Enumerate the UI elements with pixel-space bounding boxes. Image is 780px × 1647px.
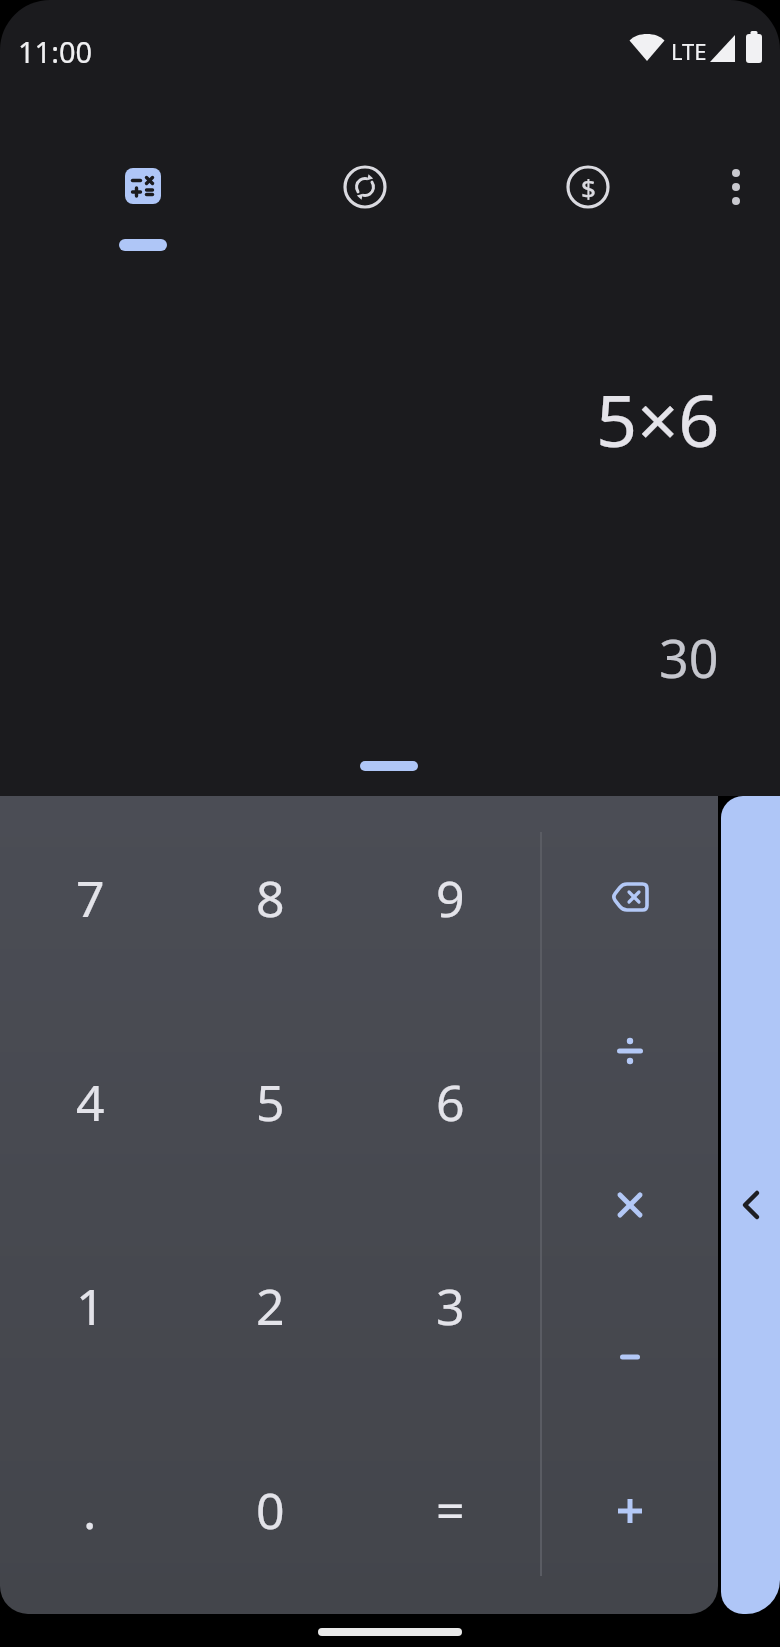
staticText: 11:00 xyxy=(18,32,93,71)
button[interactable]: 1 xyxy=(0,1204,180,1408)
button[interactable]: . xyxy=(0,1408,180,1612)
button[interactable]: = xyxy=(360,1408,540,1612)
staticText: 2 xyxy=(256,1272,285,1340)
button[interactable]: 9 xyxy=(360,796,540,1000)
button[interactable]: 6 xyxy=(360,1000,540,1204)
staticText: LTE xyxy=(671,36,707,66)
staticText: 6 xyxy=(436,1068,465,1136)
staticText: 4 xyxy=(76,1068,105,1136)
button[interactable] xyxy=(541,1128,718,1282)
button[interactable] xyxy=(721,796,780,1614)
button[interactable]: 2 xyxy=(180,1204,360,1408)
staticText: $ xyxy=(581,170,596,205)
button[interactable]: 3 xyxy=(360,1204,540,1408)
button[interactable] xyxy=(541,1432,718,1590)
staticText: 7 xyxy=(76,864,105,932)
button[interactable] xyxy=(360,761,418,771)
staticText: 3 xyxy=(436,1272,465,1340)
button[interactable] xyxy=(541,820,718,974)
staticText: 9 xyxy=(436,864,465,932)
staticText: . xyxy=(83,1476,97,1544)
button[interactable]: 8 xyxy=(180,796,360,1000)
staticText: 5 xyxy=(256,1068,285,1136)
button[interactable] xyxy=(125,168,161,204)
button[interactable]: 5 xyxy=(180,1000,360,1204)
staticText: 8 xyxy=(256,864,285,932)
staticText: = xyxy=(436,1476,465,1544)
button[interactable] xyxy=(541,1282,718,1432)
button[interactable]: 7 xyxy=(0,796,180,1000)
button[interactable] xyxy=(718,165,754,209)
staticText: 30 xyxy=(659,622,719,693)
button[interactable] xyxy=(343,165,387,209)
button[interactable] xyxy=(541,974,718,1128)
staticText: 5×6 xyxy=(596,370,720,460)
staticText: 0 xyxy=(256,1476,285,1544)
button[interactable]: $ xyxy=(566,165,610,209)
button[interactable]: 0 xyxy=(180,1408,360,1612)
staticText: 1 xyxy=(76,1272,105,1340)
button[interactable]: 4 xyxy=(0,1000,180,1204)
